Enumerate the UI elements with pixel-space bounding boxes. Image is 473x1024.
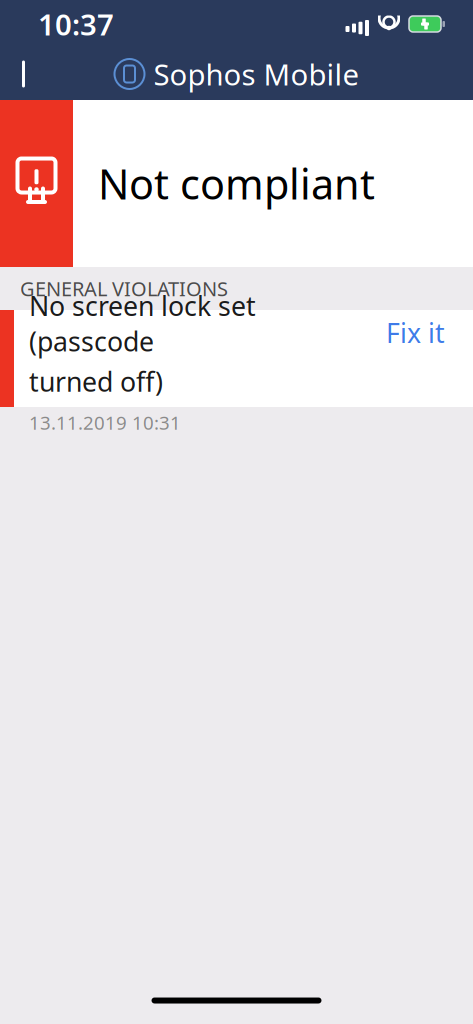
staticText: Sophos Mobile (153, 54, 359, 93)
staticText: turned off) (29, 364, 163, 399)
staticText: 10:37 (38, 4, 114, 43)
staticText: 13.11.2019 10:31 (29, 410, 181, 435)
button[interactable]: No screen lock set (passcode (0, 310, 473, 407)
staticText: Fix it (386, 315, 445, 350)
button[interactable]: Back (0, 48, 52, 100)
staticText: No screen lock set (passcode (29, 288, 256, 359)
staticText: GENERAL VIOLATIONS (20, 275, 228, 302)
staticText: Not compliant (98, 156, 375, 211)
